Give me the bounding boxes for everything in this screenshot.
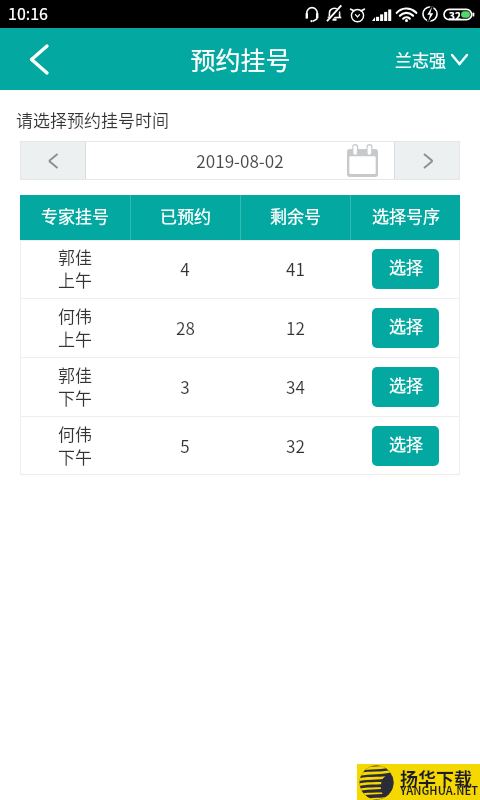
staticText: 请选择预约挂号时间 (16, 107, 169, 132)
staticText: 已预约 (160, 203, 211, 228)
staticText: 专家挂号 (41, 203, 109, 228)
button[interactable]: Next day (395, 141, 460, 180)
staticText: 选择 (389, 431, 423, 456)
staticText: 郭佳 下午 (58, 362, 92, 410)
button[interactable]: 兰志强 (395, 28, 467, 90)
staticText: 何伟 上午 (58, 303, 92, 351)
staticText: 12 (286, 315, 305, 340)
staticText: 选择号序 (372, 203, 440, 228)
staticText: 3 (180, 374, 190, 399)
staticText: 2019-08-02 (196, 148, 284, 173)
staticText: 郭佳 上午 (58, 244, 92, 292)
staticText: 预约挂号 (190, 41, 291, 77)
staticText: 10:16 (8, 1, 48, 24)
staticText: 34 (286, 374, 305, 399)
staticText: 4 (180, 256, 190, 281)
staticText: 32 (449, 8, 461, 22)
staticText: 兰志强 (395, 47, 446, 72)
button[interactable]: Previous day (20, 141, 85, 180)
staticText: 选择 (389, 313, 423, 338)
staticText: 41 (286, 256, 305, 281)
button[interactable]: 选择 (372, 308, 439, 348)
staticText: 扬华下载 (400, 765, 472, 791)
staticText: YANGHUA.NET (400, 782, 479, 798)
button[interactable]: 选择 (372, 426, 439, 466)
button[interactable]: Back (0, 28, 76, 90)
staticText: 选择 (389, 372, 423, 397)
staticText: 何伟 下午 (58, 421, 92, 469)
button[interactable]: 选择 (372, 249, 439, 289)
button[interactable]: 选择 (372, 367, 439, 407)
staticText: 32 (286, 433, 305, 458)
staticText: 28 (176, 315, 195, 340)
staticText: 5 (180, 433, 190, 458)
staticText: 剩余号 (270, 203, 321, 228)
staticText: 选择 (389, 254, 423, 279)
